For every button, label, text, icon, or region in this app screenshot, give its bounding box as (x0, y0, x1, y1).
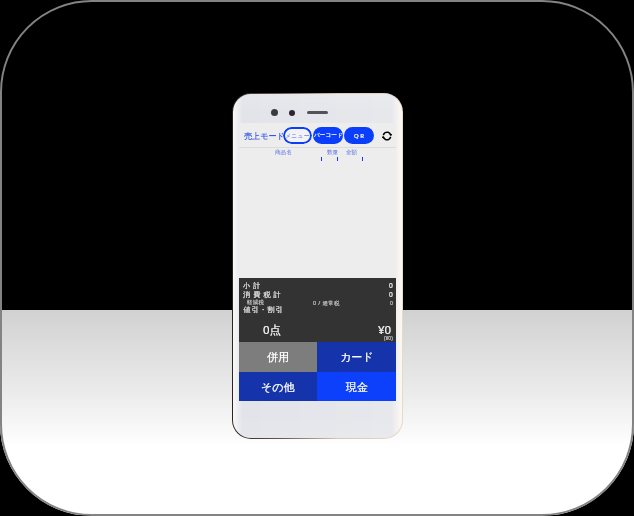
staticText: 0 / 通常税 (313, 299, 340, 306)
staticText: メニュー (285, 132, 310, 140)
staticText: 数量 (327, 149, 339, 156)
staticText: バーコード (314, 132, 343, 139)
button[interactable]: バーコード (313, 127, 343, 144)
staticText: 併用 (267, 350, 289, 364)
staticText: 0 (389, 290, 393, 299)
staticText: カード (340, 350, 374, 364)
staticText: 0 (389, 281, 393, 290)
button[interactable]: メニュー (283, 127, 312, 144)
staticText: (¥0) (384, 335, 393, 342)
staticText: 0 (390, 299, 393, 306)
button[interactable]: その他 (239, 372, 317, 401)
staticText: ¥0 (378, 322, 392, 338)
staticText: 小計 (243, 281, 264, 290)
staticText: 現金 (346, 380, 368, 394)
staticText: 売上モード (244, 131, 285, 141)
staticText: 0点 (263, 322, 282, 338)
button[interactable]: Sync (378, 127, 395, 144)
staticText: 金額 (346, 149, 358, 156)
button[interactable]: Q R (344, 127, 374, 144)
staticText: その他 (261, 380, 295, 394)
staticText: 商品名 (275, 149, 292, 156)
button[interactable]: 併用 (239, 342, 317, 372)
staticText: 値引・割引 (243, 305, 283, 314)
staticText: Q R (354, 132, 364, 140)
staticText: 消費税計 (243, 290, 284, 299)
button[interactable]: カード (317, 342, 396, 372)
staticText: 軽減税 (247, 299, 265, 306)
button[interactable]: 現金 (317, 372, 396, 401)
